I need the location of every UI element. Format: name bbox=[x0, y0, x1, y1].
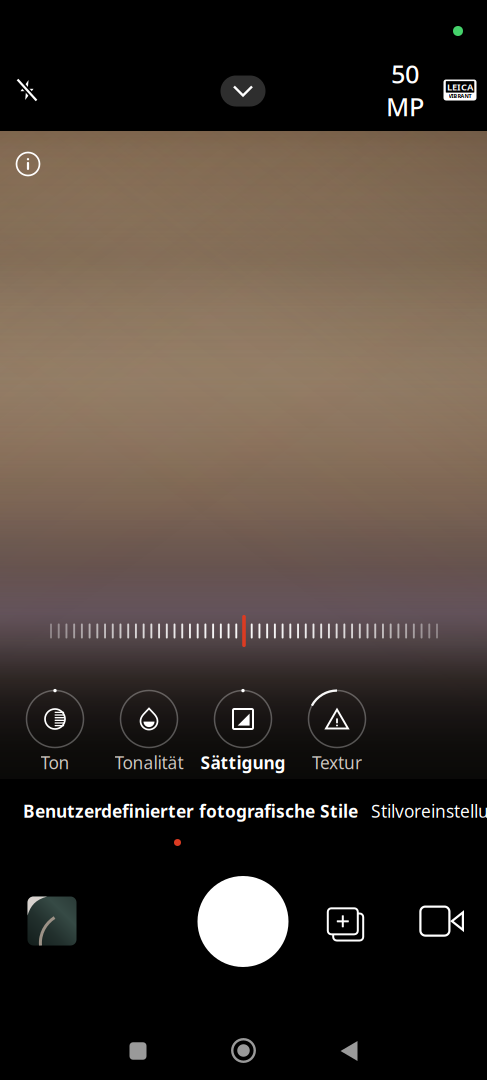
staticText: Textur bbox=[312, 751, 362, 774]
staticText: Stilvoreinstellungen bbox=[371, 799, 487, 822]
button[interactable]: Letzte Aufnahme bbox=[17, 886, 87, 956]
staticText: Ton bbox=[40, 751, 69, 774]
button[interactable]: Sättigung bbox=[196, 684, 290, 776]
button[interactable]: Übersicht bbox=[107, 1025, 169, 1077]
button[interactable]: Blitz aus bbox=[4, 67, 50, 113]
button[interactable]: 50 Megapixel bbox=[382, 67, 428, 113]
button[interactable]: Video aufnehmen bbox=[407, 893, 463, 949]
button[interactable]: Leica Vibrant bbox=[438, 68, 482, 112]
button[interactable]: Zurück bbox=[318, 1025, 380, 1077]
button[interactable]: Modus wechseln bbox=[214, 69, 272, 113]
staticText: Benutzerdefinierter fotografische Stile bbox=[23, 799, 358, 822]
button[interactable]: Stilvoreinstellungen bbox=[371, 801, 487, 821]
staticText: MP bbox=[386, 89, 424, 123]
staticText: VIBRANT bbox=[449, 92, 472, 100]
button[interactable]: Textur bbox=[290, 684, 384, 776]
staticText: Tonalität bbox=[114, 751, 183, 774]
staticText: Sättigung bbox=[200, 751, 285, 774]
button[interactable]: Startbildschirm bbox=[212, 1024, 274, 1076]
button[interactable]: Ton bbox=[8, 684, 102, 776]
button[interactable]: Auslöser bbox=[188, 866, 298, 976]
button[interactable]: Information bbox=[6, 142, 50, 186]
button[interactable]: Benutzerdefinierter fotografische Stile bbox=[23, 801, 363, 856]
button[interactable]: Tonalität bbox=[102, 684, 196, 776]
button[interactable]: Stil hinzufügen bbox=[315, 894, 371, 950]
staticText: LEICA bbox=[447, 81, 473, 93]
staticText: 50 bbox=[391, 57, 419, 90]
